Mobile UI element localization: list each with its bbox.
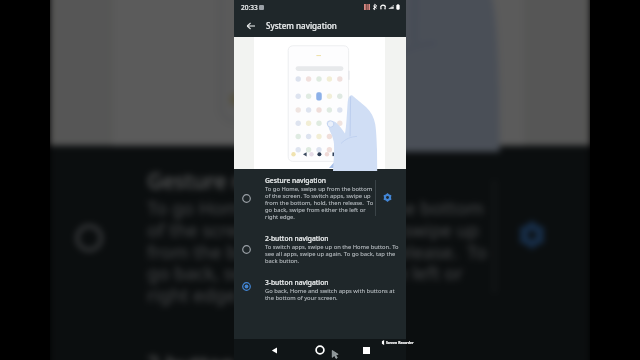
button[interactable]: Home <box>306 340 334 360</box>
staticText: To go Home, swipe up from the bottom of … <box>147 196 502 309</box>
staticText: 2-button navigation <box>147 350 348 360</box>
staticText: System navigation <box>266 20 337 31</box>
staticText: To go Home, swipe up from the bottom of … <box>265 185 378 221</box>
staticText: 3-button navigation <box>265 278 329 287</box>
staticText: Go back, Home and switch apps with butto… <box>265 287 401 302</box>
button[interactable]: Gesture navigation <box>50 167 590 318</box>
staticText: Gesture navigation <box>265 176 326 185</box>
button[interactable]: Recent apps <box>352 340 380 360</box>
staticText: 20:33 <box>241 3 258 12</box>
button[interactable]: Gesture navigation settings <box>380 190 395 205</box>
button[interactable]: 3-button navigation <box>234 278 406 306</box>
button[interactable]: Gesture navigation settings <box>508 211 555 258</box>
staticText: Gesture navigation <box>147 167 339 196</box>
staticText: Screen Recorder <box>386 340 414 345</box>
staticText: 2-button navigation <box>265 234 329 243</box>
button[interactable]: Gesture navigation <box>234 176 406 224</box>
staticText: To switch apps, swipe up on the Home but… <box>265 243 401 265</box>
button[interactable]: 2-button navigation <box>234 234 406 270</box>
button[interactable]: Back <box>239 14 262 37</box>
button[interactable]: 2-button navigation <box>50 350 590 360</box>
button[interactable]: Back <box>260 340 288 360</box>
